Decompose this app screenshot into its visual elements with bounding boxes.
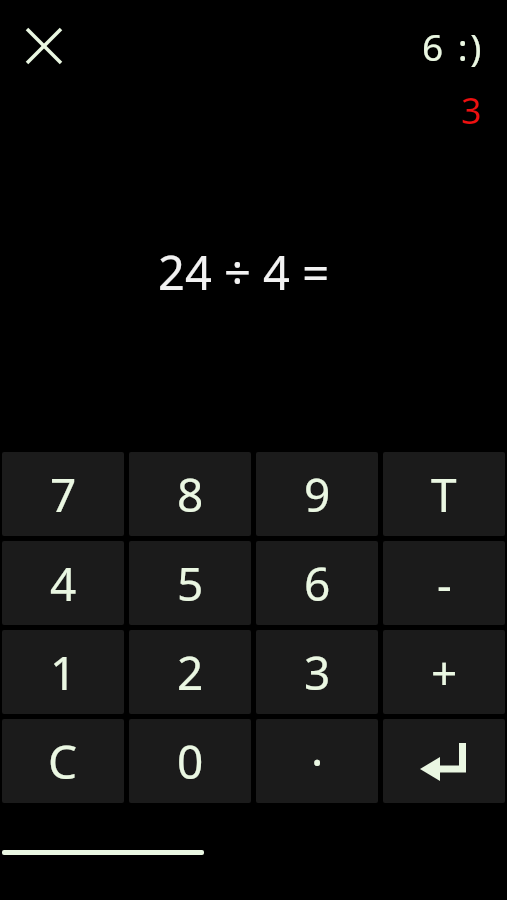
staticText: T [431, 463, 457, 526]
staticText: 2 [177, 641, 204, 704]
staticText: 24 ÷ 4 = [158, 240, 330, 304]
button[interactable]: 2 [129, 630, 251, 714]
staticText: · [311, 730, 324, 793]
button[interactable]: 7 [2, 452, 124, 536]
button[interactable]: 6 [256, 541, 378, 625]
staticText: - [437, 552, 452, 615]
staticText: 6 [304, 552, 331, 615]
button[interactable]: · [256, 719, 378, 803]
button[interactable] [20, 22, 68, 70]
button[interactable]: 4 [2, 541, 124, 625]
staticText: 9 [304, 463, 331, 526]
button[interactable]: 3 [256, 630, 378, 714]
staticText: 1 [50, 641, 77, 704]
staticText: 3 [461, 86, 482, 135]
button[interactable]: - [383, 541, 505, 625]
button[interactable]: C [2, 719, 124, 803]
button[interactable] [383, 719, 505, 803]
button[interactable]: + [383, 630, 505, 714]
staticText: + [431, 641, 458, 704]
button[interactable]: 9 [256, 452, 378, 536]
staticText: 8 [177, 463, 204, 526]
button[interactable]: 5 [129, 541, 251, 625]
button[interactable]: 0 [129, 719, 251, 803]
staticText: 6 :) [422, 21, 484, 71]
button[interactable]: T [383, 452, 505, 536]
staticText: C [48, 730, 78, 793]
staticText: 7 [50, 463, 77, 526]
staticText: 3 [304, 641, 331, 704]
staticText: 5 [177, 552, 204, 615]
staticText: 4 [50, 552, 77, 615]
button[interactable]: 8 [129, 452, 251, 536]
staticText: 0 [177, 730, 204, 793]
button[interactable]: 1 [2, 630, 124, 714]
